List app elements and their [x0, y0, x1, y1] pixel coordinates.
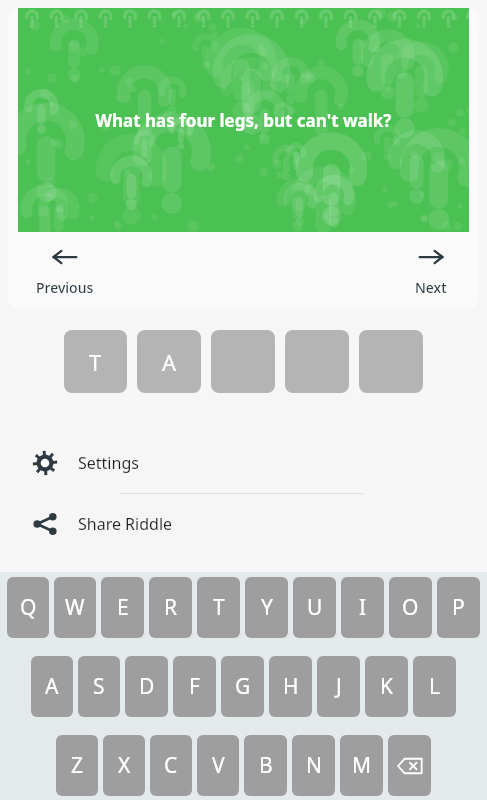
staticText: H — [283, 672, 299, 701]
staticText: B — [259, 751, 273, 780]
button[interactable]: F — [173, 656, 216, 717]
button[interactable]: D — [125, 656, 168, 717]
button[interactable]: H — [269, 656, 312, 717]
button[interactable]: Z — [56, 735, 98, 796]
button[interactable] — [359, 330, 423, 393]
button[interactable]: R — [149, 577, 192, 638]
button[interactable] — [285, 330, 349, 393]
button[interactable]: B — [244, 735, 287, 796]
staticText: K — [380, 672, 393, 701]
staticText: T — [213, 593, 225, 622]
staticText: N — [306, 751, 322, 780]
button[interactable]: X — [103, 735, 145, 796]
button[interactable]: T — [64, 330, 127, 393]
staticText: M — [352, 751, 372, 780]
button[interactable]: Next — [415, 242, 447, 297]
button[interactable]: V — [197, 735, 239, 796]
button[interactable]: Settings — [0, 433, 487, 493]
button[interactable]: Backspace — [388, 735, 431, 796]
staticText: U — [307, 593, 323, 622]
button[interactable]: C — [150, 735, 192, 796]
staticText: Share Riddle — [78, 513, 173, 535]
button[interactable]: E — [101, 577, 144, 638]
button[interactable]: P — [437, 577, 480, 638]
button[interactable]: Q — [7, 577, 49, 638]
button[interactable]: L — [413, 656, 456, 717]
staticText: O — [402, 593, 419, 622]
staticText: Y — [261, 593, 273, 622]
staticText: Next — [415, 278, 447, 297]
button[interactable]: A — [31, 656, 73, 717]
button[interactable]: W — [54, 577, 96, 638]
staticText: F — [189, 672, 200, 701]
staticText: T — [89, 347, 102, 377]
staticText: X — [118, 751, 131, 780]
button[interactable] — [211, 330, 275, 393]
staticText: I — [359, 593, 367, 622]
staticText: E — [117, 593, 129, 622]
staticText: G — [235, 672, 251, 701]
staticText: D — [139, 672, 155, 701]
button[interactable]: N — [292, 735, 335, 796]
staticText: Q — [20, 593, 37, 622]
staticText: Settings — [78, 452, 139, 474]
button[interactable]: Previous — [36, 242, 94, 297]
button[interactable]: I — [341, 577, 384, 638]
staticText: A — [162, 347, 177, 377]
button[interactable]: Y — [245, 577, 288, 638]
button[interactable]: J — [317, 656, 360, 717]
staticText: C — [164, 751, 178, 780]
button[interactable]: K — [365, 656, 408, 717]
staticText: W — [65, 593, 85, 622]
button[interactable]: T — [197, 577, 240, 638]
button[interactable]: S — [78, 656, 120, 717]
button[interactable]: O — [389, 577, 432, 638]
staticText: Z — [71, 751, 84, 780]
staticText: S — [93, 672, 105, 701]
button[interactable]: U — [293, 577, 336, 638]
button[interactable]: Share Riddle — [0, 494, 487, 554]
staticText: J — [336, 672, 342, 701]
button[interactable]: M — [340, 735, 383, 796]
staticText: R — [164, 593, 178, 622]
staticText: What has four legs, but can't walk? — [36, 109, 451, 132]
button[interactable]: A — [137, 330, 201, 393]
staticText: Previous — [36, 278, 94, 297]
staticText: L — [429, 672, 441, 701]
staticText: A — [45, 672, 59, 701]
staticText: V — [212, 751, 225, 780]
button[interactable]: G — [221, 656, 264, 717]
staticText: P — [452, 593, 465, 622]
